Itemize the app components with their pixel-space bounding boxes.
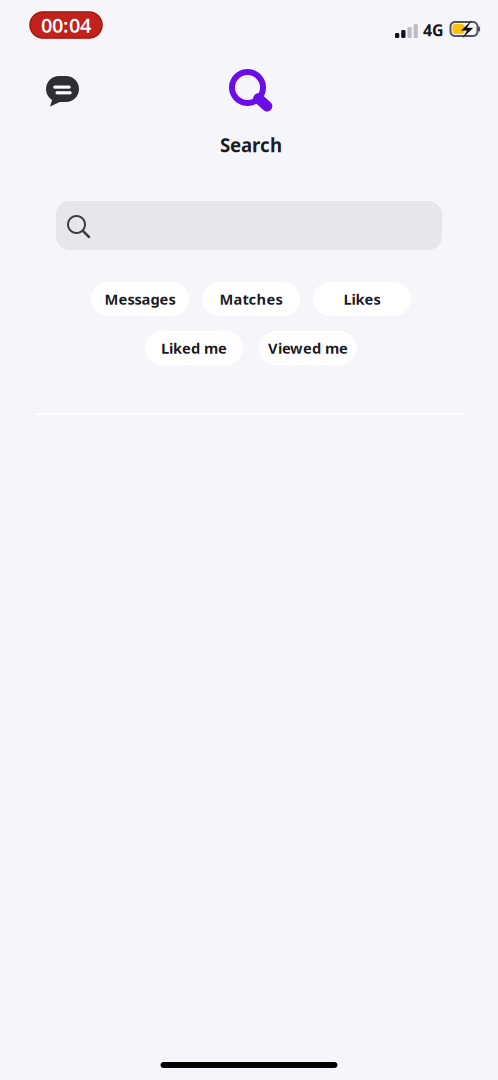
button[interactable]: Liked me — [145, 331, 243, 365]
button[interactable]: Likes — [313, 282, 411, 316]
button[interactable]: Search — [56, 201, 442, 250]
staticText: Viewed me — [268, 338, 348, 358]
staticText: Messages — [104, 289, 175, 309]
staticText: Matches — [219, 289, 282, 309]
staticText: Search — [220, 133, 282, 157]
button[interactable]: Viewed me — [259, 331, 357, 365]
staticText: Liked me — [161, 338, 227, 358]
staticText: Likes — [343, 289, 380, 309]
button[interactable]: Messages — [91, 282, 189, 316]
staticText: 00:04 — [41, 12, 91, 38]
staticText: 4G — [423, 19, 444, 41]
button[interactable]: Matches — [202, 282, 300, 316]
